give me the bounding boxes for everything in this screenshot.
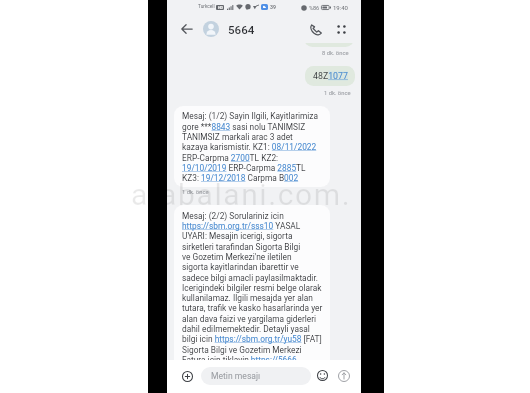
staticText: Mesaj: (1/2) Sayin Ilgili, Kayitlarimiza	[182, 111, 319, 121]
staticText: 1 dk. önce	[182, 189, 209, 196]
staticText: 8 dk. önce	[322, 50, 349, 57]
staticText: alan dava faizi ve yargilama giderleri	[182, 314, 317, 324]
staticText: UYARI: Mesajin icerigi, sigorta	[182, 231, 293, 241]
button[interactable]: 48Z1077	[305, 66, 355, 86]
staticText: 1 dk. önce	[324, 90, 351, 97]
staticText: sadece bilgi amacli paylasilmaktadir.	[182, 273, 318, 283]
button[interactable]: Mesaj: (1/2) Sayin Ilgili, Kayitlarimiza	[174, 106, 330, 187]
staticText: 19/10/2019 ERP-Carpma 2885TL	[182, 163, 306, 173]
staticText: dahil edilmemektedir. Detayli yasal	[182, 324, 310, 334]
staticText: kullanilamaz. Ilgili mesajda yer alan	[182, 293, 313, 303]
staticText: Sigorta Bilgi ve Gozetim Merkezi	[182, 345, 302, 355]
staticText: Icerigindeki bilgiler resmi belge olarak	[182, 283, 322, 293]
staticText: gore ***8843 sasi nolu TANIMSIZ	[182, 122, 306, 132]
staticText: https://sbm.org.tr/sss10 YASAL	[182, 221, 301, 231]
staticText: 5664	[228, 23, 255, 37]
staticText: bilgi icin https://sbm.org.tr/yu58 [FAT]	[182, 334, 322, 344]
staticText: Mesaj: (2/2) Sorulariniz icin	[182, 211, 284, 221]
button[interactable]: Send	[334, 366, 354, 386]
staticText: sirketleri tarafindan Sigorta Bilgi	[182, 242, 301, 252]
staticText: arabalani.com.	[131, 177, 352, 212]
staticText: sigorta kayitlarindan ibarettir ve	[182, 262, 299, 272]
staticText: ve Gozetim Merkezi'ne iletilen	[182, 252, 292, 262]
staticText: Fatura icin tiklayin https://5666	[182, 355, 297, 360]
button[interactable]: Add attachment	[177, 366, 197, 386]
button[interactable]: Mesaj: (2/2) Sorulariniz icin	[174, 205, 330, 360]
staticText: TANIMSIZ markali arac 3 adet	[182, 132, 293, 142]
staticText: ERP-Carpma 2700TL KZ2:	[182, 153, 279, 163]
staticText: 48Z1077	[313, 71, 348, 81]
staticText: Metin mesajı	[211, 371, 261, 381]
staticText: 39	[270, 4, 276, 10]
staticText: kazaya karismistir. KZ1: 08/11/2022	[182, 142, 317, 152]
staticText: KZ3: 19/12/2018 Carpma B002	[182, 173, 299, 183]
button[interactable]: Metin mesajı	[201, 367, 311, 385]
staticText: 19:40	[333, 4, 348, 11]
button[interactable]: Emoji	[312, 365, 332, 385]
staticText: tutara, trafik ve kasko hasarlarinda yer	[182, 303, 323, 313]
staticText: Turkcell	[198, 4, 215, 10]
button[interactable]: Back	[177, 19, 197, 39]
button[interactable]: Call	[306, 19, 326, 39]
button[interactable]: More options	[331, 19, 351, 39]
staticText: %86	[309, 5, 320, 11]
staticText: HD	[218, 6, 223, 10]
